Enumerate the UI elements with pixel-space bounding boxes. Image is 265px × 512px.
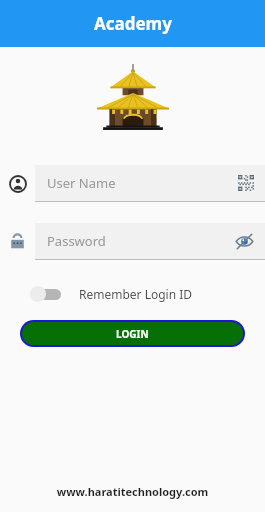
button[interactable]: Password [0,233,35,250]
staticText: Remember Login ID [79,286,193,302]
staticText: LOGIN [116,327,149,341]
button[interactable]: User [0,175,35,193]
staticText: Password [47,232,106,250]
button[interactable]: Remember Login ID toggle [28,280,63,308]
button[interactable]: LOGIN [20,320,245,347]
staticText: www.haratitechnology.com [0,484,265,499]
staticText: Academy [94,12,172,35]
staticText: User Name [47,174,116,192]
button[interactable]: Scan QR code [235,172,257,194]
button[interactable]: Show password [232,229,257,254]
button[interactable]: Password [35,223,265,259]
button[interactable]: User Name [35,165,265,201]
